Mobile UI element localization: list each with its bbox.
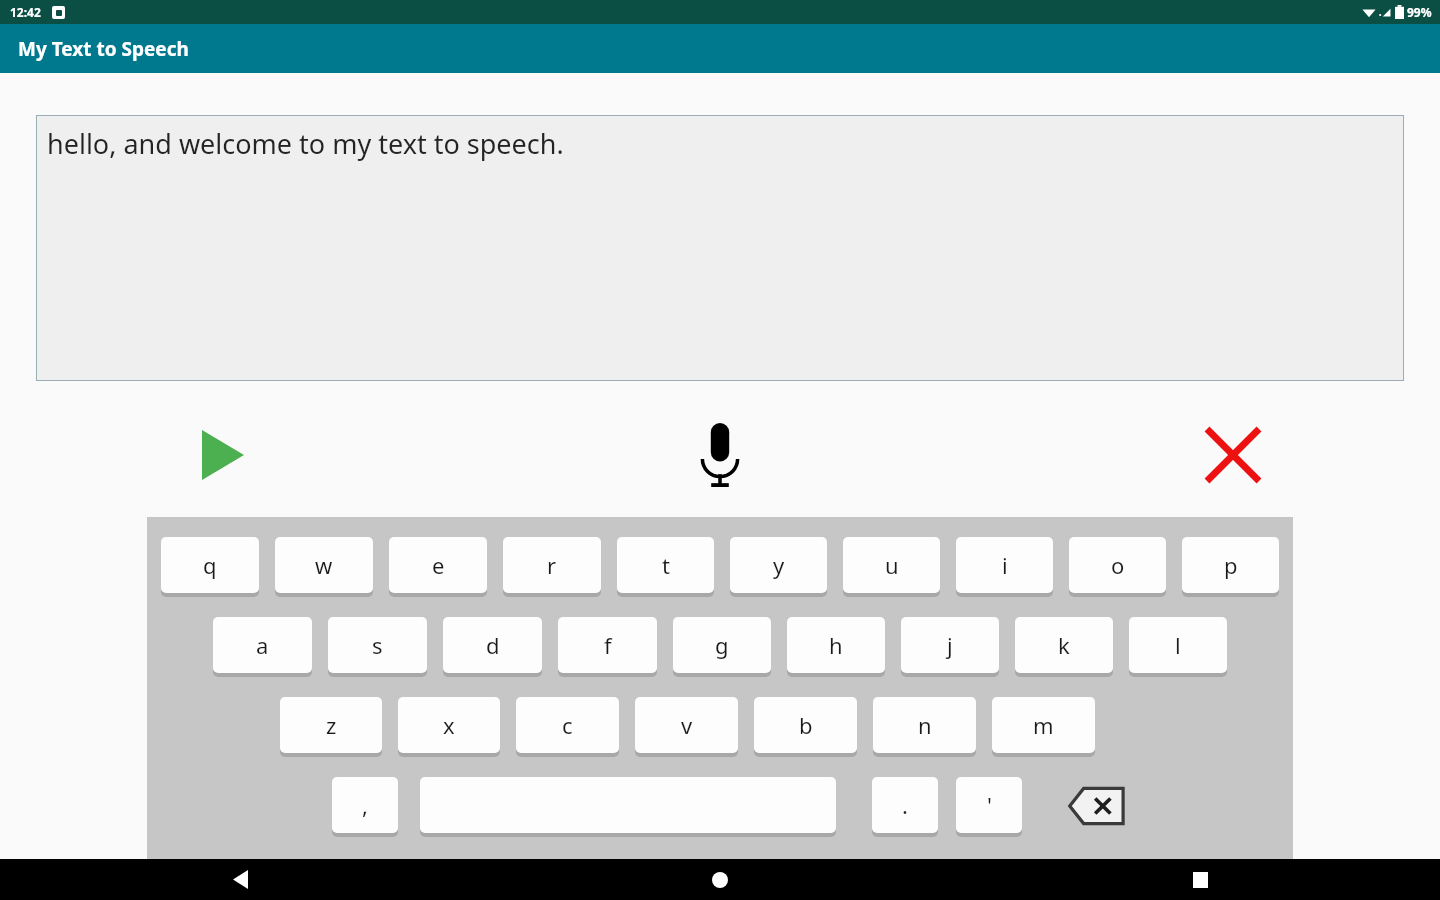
- button[interactable]: hello, and welcome to my text to speech.: [36, 115, 1404, 381]
- button[interactable]: b: [754, 697, 857, 753]
- button[interactable]: e: [389, 537, 487, 593]
- staticText: c: [562, 710, 573, 740]
- button[interactable]: r: [503, 537, 601, 593]
- button[interactable]: j: [901, 617, 999, 673]
- button[interactable]: Clear text: [1196, 418, 1270, 492]
- button[interactable]: g: [673, 617, 771, 673]
- button[interactable]: x: [398, 697, 500, 753]
- staticText: My Text to Speech: [18, 36, 189, 62]
- button[interactable]: Recent apps: [960, 859, 1440, 900]
- staticText: g: [715, 630, 729, 660]
- button[interactable]: t: [617, 537, 714, 593]
- staticText: u: [885, 550, 899, 580]
- staticText: m: [1033, 710, 1054, 740]
- staticText: r: [547, 550, 557, 580]
- button[interactable]: z: [280, 697, 382, 753]
- button[interactable]: Speak: [186, 418, 260, 492]
- staticText: d: [486, 630, 500, 660]
- button[interactable]: ,: [332, 777, 398, 833]
- button[interactable]: f: [558, 617, 657, 673]
- button[interactable]: p: [1182, 537, 1279, 593]
- staticText: x: [443, 710, 455, 740]
- button[interactable]: v: [635, 697, 738, 753]
- button[interactable]: q: [161, 537, 259, 593]
- button[interactable]: n: [873, 697, 976, 753]
- staticText: h: [829, 630, 843, 660]
- staticText: b: [799, 710, 813, 740]
- button[interactable]: a: [213, 617, 312, 673]
- staticText: ': [987, 790, 992, 820]
- button[interactable]: i: [956, 537, 1053, 593]
- staticText: f: [604, 630, 612, 660]
- button[interactable]: w: [275, 537, 373, 593]
- staticText: z: [326, 710, 337, 740]
- button[interactable]: c: [516, 697, 619, 753]
- button[interactable]: Home: [480, 859, 960, 900]
- button[interactable]: s: [328, 617, 427, 673]
- staticText: k: [1058, 630, 1070, 660]
- button[interactable]: m: [992, 697, 1095, 753]
- staticText: y: [773, 550, 785, 580]
- staticText: t: [662, 550, 670, 580]
- staticText: e: [432, 550, 445, 580]
- button[interactable]: k: [1015, 617, 1113, 673]
- button[interactable]: Backspace: [1066, 777, 1128, 835]
- button[interactable]: .: [872, 777, 938, 833]
- staticText: n: [918, 710, 932, 740]
- staticText: o: [1111, 550, 1125, 580]
- staticText: 99%: [1407, 4, 1432, 20]
- staticText: w: [315, 550, 333, 580]
- button[interactable]: Voice input: [681, 416, 759, 494]
- staticText: v: [681, 710, 693, 740]
- button[interactable]: u: [843, 537, 940, 593]
- staticText: ,: [362, 790, 368, 820]
- staticText: q: [203, 550, 217, 580]
- button[interactable]: h: [787, 617, 885, 673]
- staticText: p: [1224, 550, 1238, 580]
- button[interactable]: o: [1069, 537, 1166, 593]
- button[interactable]: ': [956, 777, 1022, 833]
- staticText: l: [1175, 630, 1181, 660]
- staticText: 12:42: [10, 4, 41, 20]
- button[interactable]: d: [443, 617, 542, 673]
- button[interactable]: y: [730, 537, 827, 593]
- staticText: .: [902, 790, 908, 820]
- staticText: j: [947, 630, 953, 660]
- button[interactable]: l: [1129, 617, 1227, 673]
- staticText: i: [1002, 550, 1008, 580]
- staticText: s: [372, 630, 383, 660]
- button[interactable]: Back: [0, 859, 480, 900]
- staticText: hello, and welcome to my text to speech.: [47, 125, 564, 162]
- staticText: a: [256, 630, 269, 660]
